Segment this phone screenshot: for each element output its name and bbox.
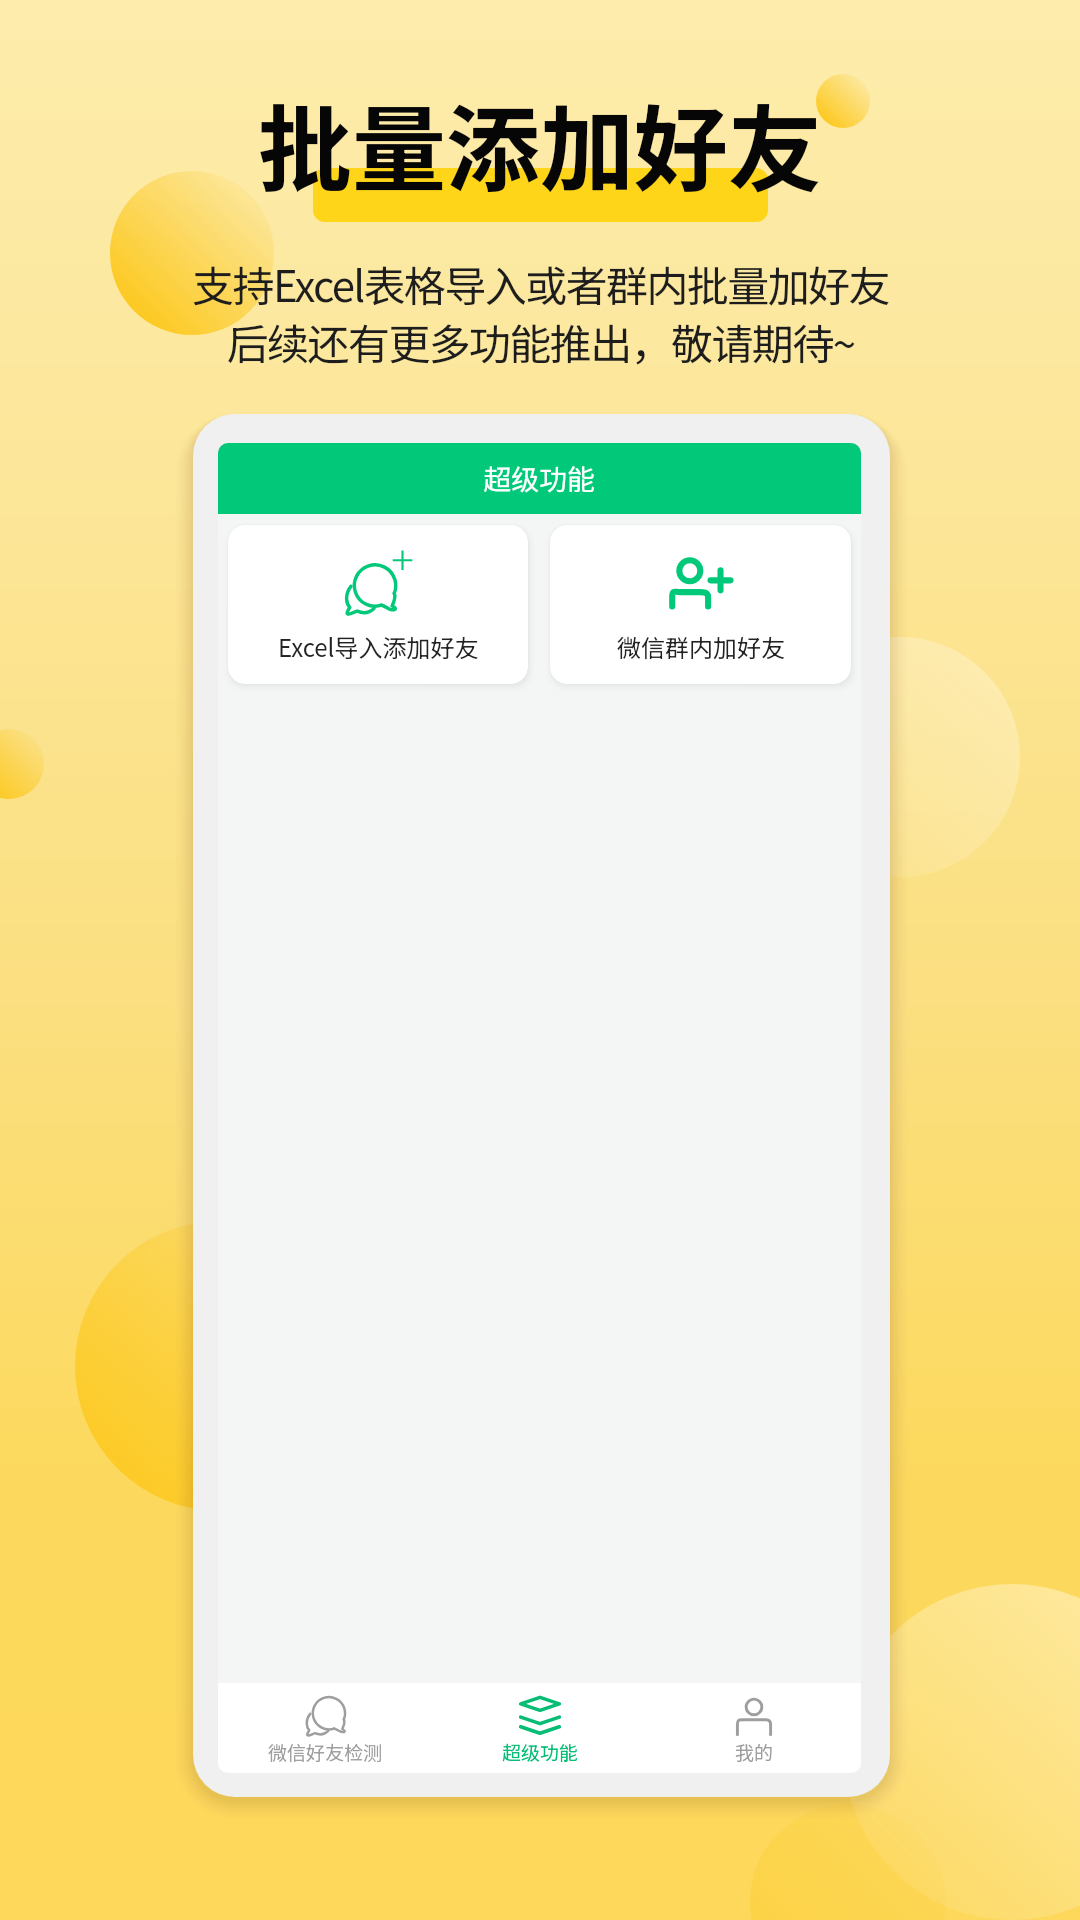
staticText: 微信群内加好友 [617, 629, 785, 664]
button[interactable]: 微信好友检测 [218, 1683, 433, 1773]
other: Excel导入添加好友 [344, 550, 413, 619]
button[interactable]: Excel导入添加好友 [228, 525, 528, 684]
staticText: 批量添加好友 [258, 75, 823, 211]
other: 超级功能 [519, 1695, 561, 1737]
other: 我的 [733, 1695, 775, 1737]
staticText: 支持Excel表格导入或者群内批量加好友 后续还有更多功能推出，敬请期待~ [192, 253, 889, 372]
staticText: Excel导入添加好友 [278, 629, 479, 664]
button[interactable]: 超级功能 [218, 443, 861, 514]
button[interactable]: 微信群内加好友 [550, 525, 851, 684]
staticText: 我的 [735, 1738, 774, 1766]
button[interactable]: 我的 [647, 1683, 861, 1773]
staticText: 微信好友检测 [268, 1738, 383, 1766]
button[interactable]: 超级功能 [433, 1683, 647, 1773]
staticText: 超级功能 [483, 458, 596, 499]
other: 微信好友检测 [305, 1695, 347, 1737]
other: 微信群内加好友 [666, 550, 735, 619]
staticText: 超级功能 [502, 1738, 579, 1766]
